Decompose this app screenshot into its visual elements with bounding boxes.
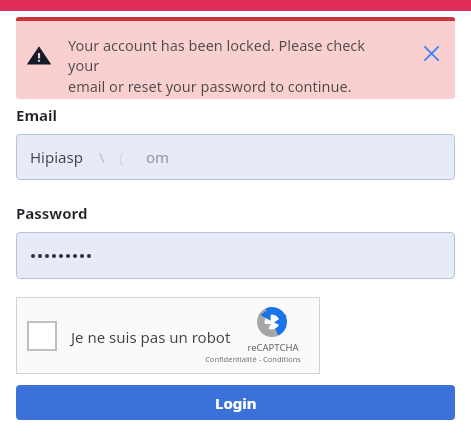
- staticText: email or reset your password to continue…: [68, 76, 352, 96]
- staticText: Je ne suis pas un robot: [71, 327, 231, 347]
- staticText: om: [146, 147, 170, 167]
- button[interactable]: Your account has been locked. Please che…: [16, 17, 455, 99]
- staticText: \: [99, 147, 105, 167]
- button[interactable]: [16, 232, 455, 279]
- staticText: Email: [16, 105, 57, 125]
- button[interactable]: Login: [16, 385, 455, 420]
- staticText: (: [119, 147, 124, 167]
- button[interactable]: I am not a robot checkbox: [27, 321, 57, 351]
- button[interactable]: Close alert: [417, 39, 445, 67]
- staticText: reCAPTCHA: [233, 341, 313, 354]
- staticText: Hipiasp: [30, 147, 83, 167]
- button[interactable]: I am not a robot checkbox: [16, 297, 320, 374]
- staticText: Your account has been locked. Please che…: [68, 35, 388, 76]
- staticText: Password: [16, 203, 88, 223]
- staticText: Login: [215, 393, 257, 413]
- staticText: Confidentialité - Conditions: [193, 354, 313, 364]
- button[interactable]: Hipiasp: [16, 134, 455, 180]
